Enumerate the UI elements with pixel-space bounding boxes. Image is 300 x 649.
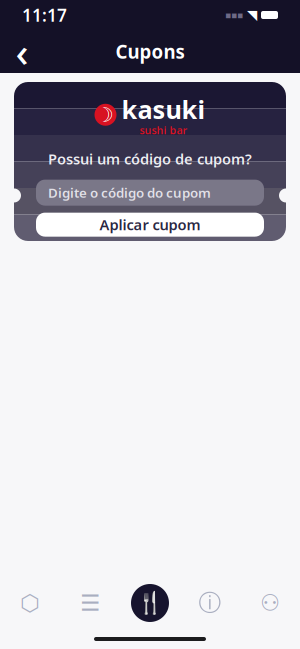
button[interactable]: Digite o código do cupom — [36, 180, 264, 206]
staticText: 🍴 — [136, 591, 163, 615]
button[interactable]: Orders — [60, 575, 120, 631]
button[interactable]: Back — [0, 30, 44, 72]
staticText: Cupons — [115, 39, 184, 64]
staticText: ‹ — [15, 25, 28, 78]
staticText: ☰ — [80, 590, 100, 616]
staticText: 11:17 — [22, 3, 67, 26]
staticText: Possui um código de cupom? — [48, 149, 252, 169]
button[interactable]: Coupons — [0, 575, 60, 631]
staticText: Aplicar cupom — [99, 215, 200, 234]
staticText: ◥ — [247, 7, 257, 22]
button[interactable]: Menu — [122, 575, 178, 631]
staticText: ⓘ — [198, 589, 221, 617]
staticText: ⬡ — [20, 590, 40, 616]
staticText: ⚇ — [260, 590, 280, 616]
staticText: sushi bar — [139, 123, 187, 137]
staticText: kasuki — [121, 92, 205, 126]
staticText: ▪▪▪ — [225, 10, 243, 20]
button[interactable]: Information — [180, 575, 240, 631]
staticText: ☽ — [95, 103, 113, 126]
staticText: Digite o código do cupom — [48, 184, 211, 201]
button[interactable]: Aplicar cupom — [36, 213, 264, 237]
button[interactable]: Profile — [240, 575, 300, 631]
